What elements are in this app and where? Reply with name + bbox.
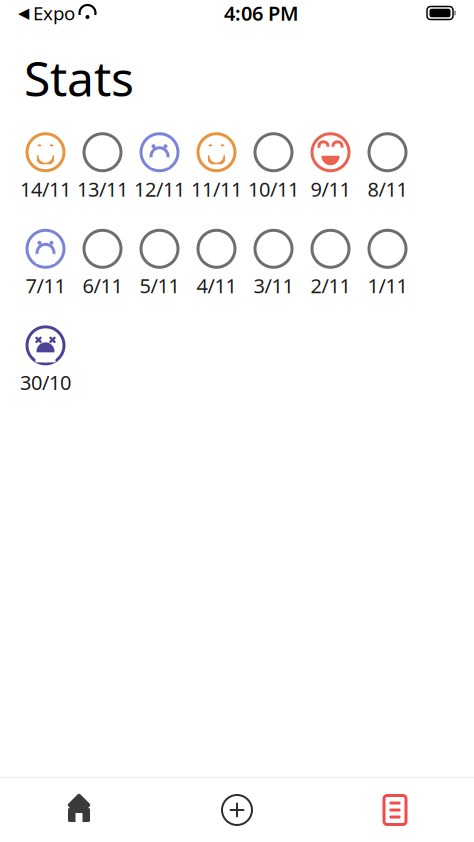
button[interactable]: Add entry [158, 778, 316, 842]
staticText: ◀ [18, 5, 29, 21]
staticText: 11/11 [191, 176, 242, 202]
staticText: 13/11 [77, 176, 128, 202]
button[interactable]: 10/11 [245, 134, 302, 202]
staticText: Stats [24, 46, 134, 110]
button[interactable]: 13/11 [74, 134, 131, 202]
button[interactable]: 6/11 [74, 230, 131, 299]
staticText: 10/11 [248, 176, 299, 202]
staticText: Expo [33, 1, 75, 25]
button[interactable]: Stats [316, 778, 474, 842]
staticText: 30/10 [20, 369, 71, 395]
button[interactable]: 14/11 [17, 134, 74, 202]
button[interactable]: 9/11 [302, 134, 359, 202]
button[interactable]: 11/11 [188, 134, 245, 202]
button[interactable]: 1/11 [359, 230, 416, 299]
staticText: 14/11 [20, 176, 71, 202]
staticText: 5/11 [139, 272, 179, 299]
staticText: 4:06 PM [224, 0, 299, 26]
staticText: 4/11 [196, 272, 236, 299]
button[interactable]: 8/11 [359, 134, 416, 202]
button[interactable]: 12/11 [131, 134, 188, 202]
staticText: 6/11 [82, 272, 122, 299]
staticText: 3/11 [253, 272, 293, 299]
button[interactable]: 4/11 [188, 230, 245, 299]
button[interactable]: 5/11 [131, 230, 188, 299]
button[interactable]: 30/10 [17, 327, 74, 395]
button[interactable]: Home [0, 778, 158, 842]
button[interactable]: 3/11 [245, 230, 302, 299]
button[interactable]: 2/11 [302, 230, 359, 299]
staticText: 7/11 [25, 272, 65, 299]
staticText: 8/11 [367, 176, 407, 202]
button[interactable]: 7/11 [17, 230, 74, 299]
staticText: 12/11 [134, 176, 185, 202]
staticText: 2/11 [310, 272, 350, 299]
staticText: 9/11 [310, 176, 350, 202]
staticText: 1/11 [367, 272, 407, 299]
